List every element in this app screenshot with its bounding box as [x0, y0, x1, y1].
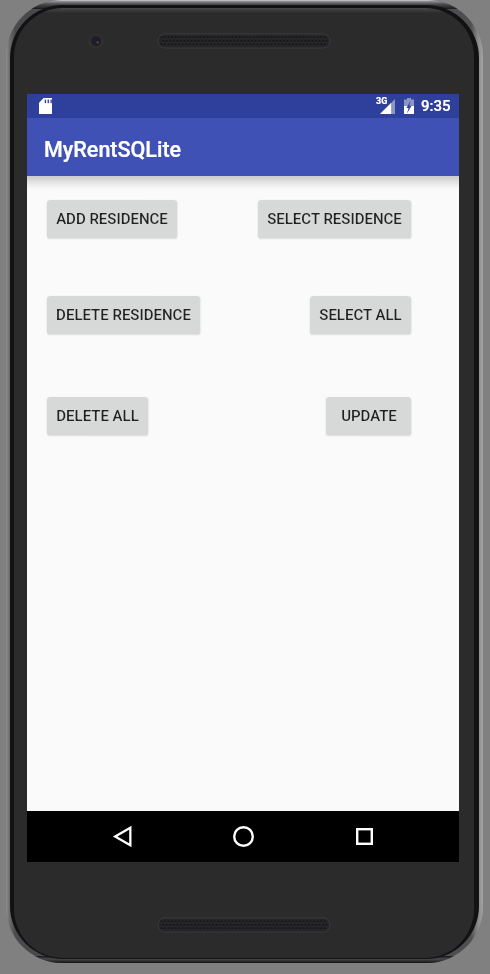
- staticText: DELETE RESIDENCE: [56, 306, 191, 324]
- button[interactable]: SELECT RESIDENCE: [258, 200, 411, 238]
- button[interactable]: Back: [93, 811, 153, 862]
- button[interactable]: DELETE RESIDENCE: [47, 296, 200, 334]
- staticText: 9:35: [421, 97, 451, 115]
- button[interactable]: ADD RESIDENCE: [47, 200, 177, 238]
- staticText: DELETE ALL: [56, 407, 139, 425]
- button[interactable]: SELECT ALL: [310, 296, 411, 334]
- staticText: ADD RESIDENCE: [56, 210, 168, 228]
- button[interactable]: DELETE ALL: [47, 397, 148, 435]
- staticText: MyRentSQLite: [44, 137, 182, 162]
- button[interactable]: Home: [213, 811, 273, 862]
- staticText: 3G: [376, 96, 388, 107]
- staticText: SELECT RESIDENCE: [267, 210, 402, 228]
- staticText: UPDATE: [341, 407, 397, 425]
- button[interactable]: Recent apps: [334, 811, 394, 862]
- button[interactable]: UPDATE: [326, 397, 411, 435]
- staticText: SELECT ALL: [319, 306, 402, 324]
